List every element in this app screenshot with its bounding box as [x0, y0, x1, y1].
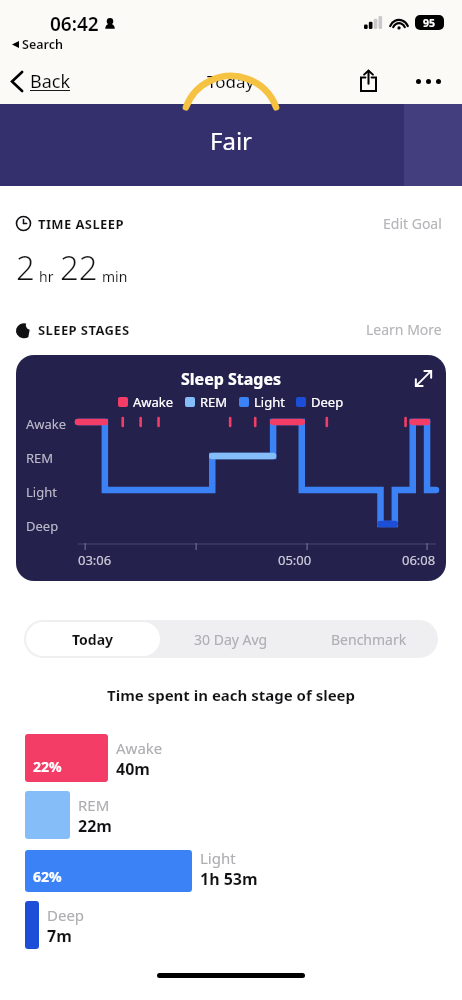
button[interactable]: REM — [25, 791, 446, 839]
button[interactable]: Sleep Stages — [16, 355, 446, 581]
staticText: 40m — [116, 758, 150, 780]
button[interactable]: 22% — [25, 734, 446, 782]
button[interactable]: Benchmark — [300, 620, 438, 658]
staticText: REM — [200, 393, 228, 411]
button[interactable]: Back — [0, 61, 79, 101]
button[interactable]: 30 Day Avg — [162, 620, 300, 658]
staticText: Today — [207, 70, 255, 93]
staticText: 22 — [60, 245, 98, 290]
staticText: Light — [254, 393, 285, 411]
staticText: 05:00 — [278, 551, 312, 569]
staticText: Edit Goal — [383, 214, 442, 233]
button[interactable]: Learn More — [362, 316, 446, 343]
staticText: REM — [26, 449, 54, 467]
staticText: REM — [78, 795, 110, 815]
staticText: 1h 53m — [200, 868, 258, 890]
staticText: 7m — [47, 925, 72, 947]
staticText: Deep — [47, 905, 85, 925]
staticText: 2 — [16, 245, 35, 290]
staticText: SLEEP STAGES — [38, 321, 130, 339]
staticText: Benchmark — [331, 630, 407, 649]
staticText: Learn More — [366, 320, 442, 339]
staticText: Back — [30, 69, 71, 94]
staticText: Awake — [26, 415, 67, 433]
staticText: 95 — [423, 16, 436, 30]
staticText: TIME ASLEEP — [38, 215, 124, 233]
staticText: Search — [22, 36, 63, 53]
staticText: Awake — [133, 393, 174, 411]
staticText: 62% — [33, 867, 62, 886]
staticText: 03:06 — [78, 551, 112, 569]
staticText: Sleep Stages — [181, 368, 282, 390]
staticText: 06:08 — [402, 551, 436, 569]
button[interactable]: Deep — [25, 901, 446, 949]
staticText: 06:42 — [50, 11, 99, 37]
staticText: min — [102, 267, 128, 286]
staticText: Light — [200, 848, 236, 868]
staticText: 30 Day Avg — [194, 630, 268, 649]
staticText: hr — [39, 267, 54, 286]
staticText: Awake — [116, 738, 163, 758]
button[interactable]: Expand chart — [406, 361, 440, 395]
button[interactable]: Share — [348, 61, 388, 101]
staticText: Time spent in each stage of sleep — [107, 685, 356, 705]
staticText: 22% — [33, 757, 62, 776]
button[interactable]: Today — [26, 622, 160, 656]
staticText: Fair — [210, 124, 253, 157]
staticText: Deep — [26, 517, 59, 535]
staticText: Deep — [311, 393, 344, 411]
staticText: 22m — [78, 815, 112, 837]
staticText: Today — [72, 630, 114, 649]
button[interactable]: 62% — [25, 848, 446, 892]
staticText: Light — [26, 483, 57, 501]
button[interactable]: More options — [406, 59, 450, 103]
button[interactable]: Edit Goal — [379, 210, 446, 237]
